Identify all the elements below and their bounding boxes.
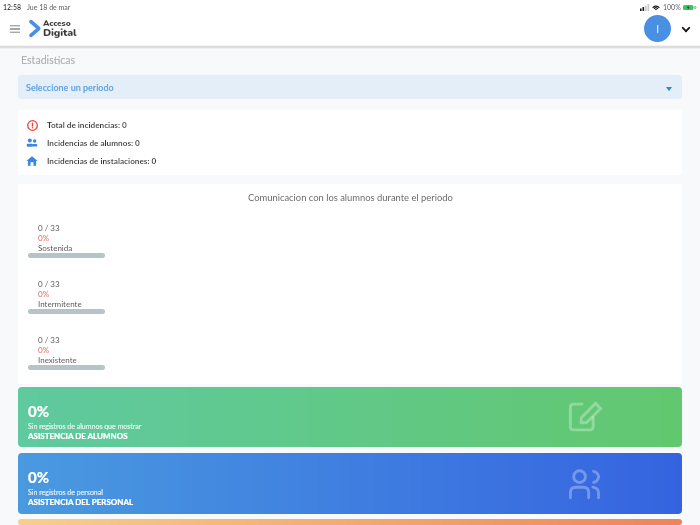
staticText: 0% (38, 289, 50, 299)
staticText: Seleccione un periodo (26, 82, 114, 93)
staticText: Total de incidencias: 0 (47, 120, 127, 130)
staticText: 0% (28, 468, 49, 486)
staticText: Incidencias de instalaciones: 0 (47, 156, 157, 166)
staticText: Estadisticas (21, 54, 76, 67)
button[interactable]: Perfil de usuario (644, 15, 671, 42)
staticText: Jue 18 de mar (27, 3, 71, 11)
staticText: 0% (38, 345, 50, 355)
staticText: Sostenida (38, 243, 73, 253)
staticText: 0% (28, 402, 49, 420)
staticText: 12:58 (3, 3, 22, 11)
button[interactable]: Total de incidencias: 0 (18, 116, 682, 134)
staticText: 0 / 33 (38, 335, 60, 345)
staticText: ASISTENCIA DE ALUMNOS (28, 431, 128, 441)
button[interactable]: 0% (18, 387, 682, 447)
staticText: Comunicacion con los alumnos durante el … (248, 192, 453, 203)
staticText: 0 / 33 (38, 223, 60, 233)
button[interactable]: Incidencias de alumnos: 0 (18, 134, 682, 152)
staticText: 100% (663, 3, 681, 11)
staticText: Acceso (43, 18, 71, 29)
staticText: Digital (43, 25, 77, 39)
button[interactable]: Incidencias de instalaciones: 0 (18, 152, 682, 170)
staticText: Intermitente (38, 299, 82, 309)
staticText: 0% (38, 233, 50, 243)
staticText: 0 / 33 (38, 279, 60, 289)
button[interactable]: Mas opciones (679, 22, 693, 36)
staticText: I (656, 22, 660, 35)
button[interactable]: Seleccione un periodo (18, 75, 682, 99)
staticText: Sin registros de personal (28, 488, 103, 496)
staticText: ASISTENCIA DEL PERSONAL (28, 497, 134, 507)
staticText: Incidencias de alumnos: 0 (47, 138, 140, 148)
button[interactable]: 0% (18, 453, 682, 514)
button[interactable] (18, 519, 682, 525)
staticText: Inexistente (38, 355, 77, 365)
button[interactable]: Menu (6, 20, 24, 38)
staticText: Sin registros de alumnos que mostrar (28, 422, 142, 430)
